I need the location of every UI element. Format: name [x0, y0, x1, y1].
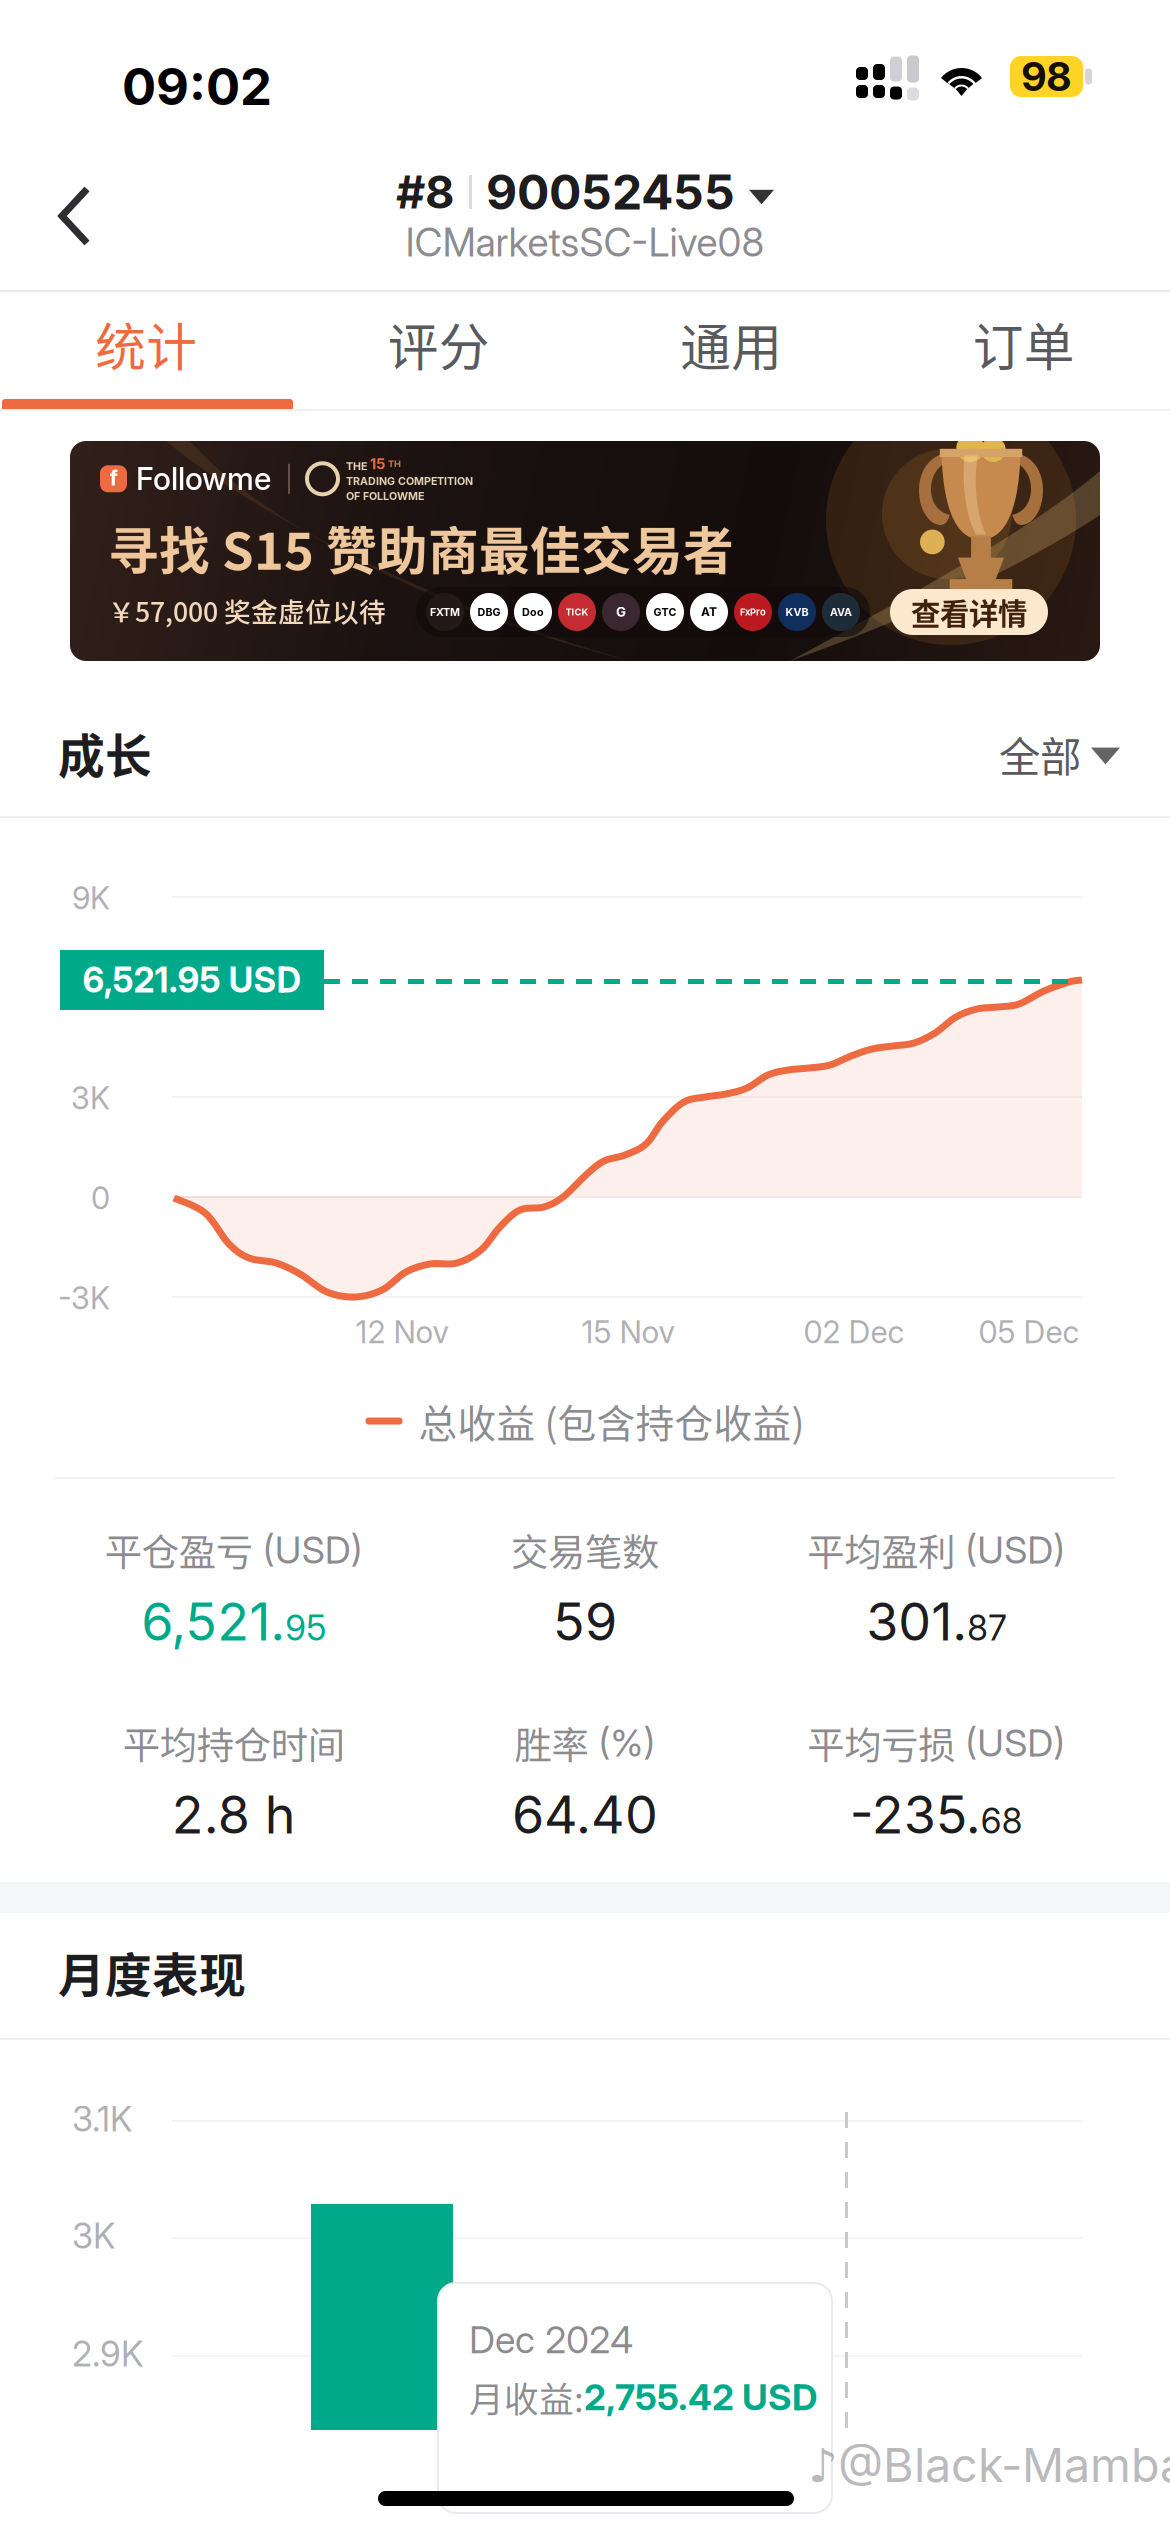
staticText: 09:02 [122, 56, 272, 117]
staticText: ICMarketsSC-Live08 [405, 219, 764, 266]
staticText: 平均持仓时间 [123, 1716, 345, 1770]
staticText: 统计 [95, 307, 197, 381]
button[interactable]: 评分 [292, 288, 585, 400]
staticText: 15 Nov [581, 1313, 674, 1350]
staticText: 寻找 S15 赞助商最佳交易者 [108, 511, 734, 584]
staticText: OF FOLLOWME [346, 490, 424, 503]
staticText: 64.40 [512, 1783, 658, 1846]
staticText: (USD) [955, 1720, 1065, 1766]
staticText: KVB [785, 605, 808, 618]
staticText: #8 [396, 165, 455, 219]
staticText: TRADING COMPETITION [346, 475, 473, 488]
staticText: 平均亏损 [807, 1716, 955, 1770]
staticText: 6,521. [141, 1590, 285, 1653]
staticText: 平均盈利 [807, 1523, 955, 1577]
staticText: FXTM [430, 605, 460, 618]
staticText: 2.8 h [172, 1783, 296, 1846]
staticText: 0 [91, 1179, 110, 1216]
staticText: 评分 [388, 307, 490, 381]
staticText: 成长 [58, 719, 152, 787]
staticText: FxPro [740, 606, 766, 618]
button[interactable]: 统计 [0, 288, 292, 400]
staticText: 95 [285, 1607, 326, 1649]
staticText: GTC [653, 605, 676, 618]
staticText: 9K [72, 879, 110, 916]
staticText: 98 [1021, 52, 1071, 101]
staticText: 查看详情 [911, 591, 1027, 633]
staticText: 3.1K [72, 2098, 132, 2140]
staticText: ♪@Black-Mamba [808, 2437, 1170, 2493]
staticText: 订单 [973, 307, 1075, 381]
button[interactable]: f [70, 441, 1100, 661]
staticText: DBG [477, 605, 500, 618]
staticText: Followme [136, 460, 271, 497]
staticText: 87 [967, 1607, 1006, 1649]
staticText: 15 [370, 455, 385, 473]
staticText: 2,755.42 USD [584, 2375, 817, 2419]
staticText: TH [388, 458, 401, 470]
staticText: 3K [71, 1079, 110, 1116]
staticText: TICK [565, 606, 588, 618]
button[interactable]: Back [30, 166, 190, 270]
staticText: (%) [588, 1720, 655, 1766]
staticText: 301. [866, 1590, 967, 1653]
staticText: 90052455 [486, 163, 735, 221]
staticText: 月度表现 [58, 1938, 246, 2006]
staticText: 总收益 (包含持仓收益) [418, 1393, 804, 1449]
staticText: f [109, 465, 117, 491]
staticText: 交易笔数 [511, 1523, 659, 1577]
staticText: -3K [58, 1279, 110, 1316]
staticText: 通用 [680, 307, 782, 381]
staticText: 全部 [999, 724, 1081, 784]
staticText: 月收益: [469, 2372, 584, 2422]
staticText: 68 [981, 1800, 1023, 1842]
staticText: 平仓盈亏 [105, 1523, 253, 1577]
staticText: AT [701, 605, 717, 619]
staticText: (USD) [253, 1527, 363, 1573]
staticText: 胜率 [514, 1716, 588, 1770]
staticText: 3K [72, 2215, 115, 2257]
staticText: 59 [553, 1590, 617, 1653]
staticText: 12 Nov [355, 1313, 448, 1350]
button[interactable]: 全部 [999, 724, 1120, 784]
staticText: AVA [830, 605, 852, 618]
staticText: 6,521.95 USD [82, 959, 301, 1001]
staticText: 2.9K [72, 2333, 143, 2375]
staticText: (USD) [955, 1527, 1065, 1573]
staticText: -235. [850, 1783, 981, 1846]
button[interactable]: 通用 [585, 288, 877, 400]
staticText: 05 Dec [978, 1313, 1079, 1350]
staticText: 02 Dec [803, 1313, 904, 1350]
staticText: Dec 2024 [469, 2317, 633, 2362]
staticText: Doo [522, 605, 544, 618]
staticText: ￥57,000 奖金虚位以待 [108, 591, 386, 630]
staticText: G [616, 604, 626, 620]
button[interactable]: 订单 [877, 288, 1170, 400]
staticText: THE [346, 460, 367, 473]
